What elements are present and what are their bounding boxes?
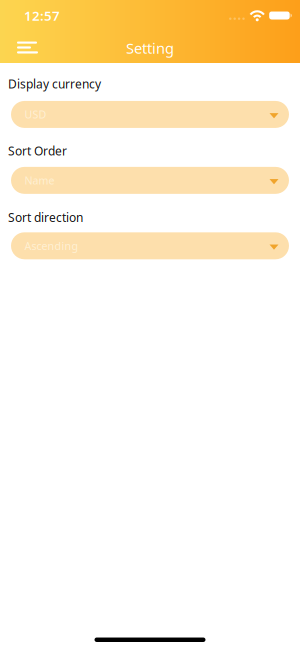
button[interactable]: Menu — [0, 36, 38, 58]
staticText: Sort direction — [8, 209, 83, 225]
staticText: Name — [24, 173, 54, 187]
staticText: 12:57 — [24, 7, 60, 24]
staticText: Display currency — [8, 76, 101, 92]
staticText: USD — [24, 107, 46, 122]
staticText: Setting — [126, 38, 174, 58]
button[interactable]: Name — [11, 167, 289, 194]
button[interactable]: Ascending — [11, 232, 289, 259]
staticText: Ascending — [24, 239, 78, 253]
staticText: Sort Order — [8, 143, 67, 159]
button[interactable]: USD — [11, 101, 289, 128]
